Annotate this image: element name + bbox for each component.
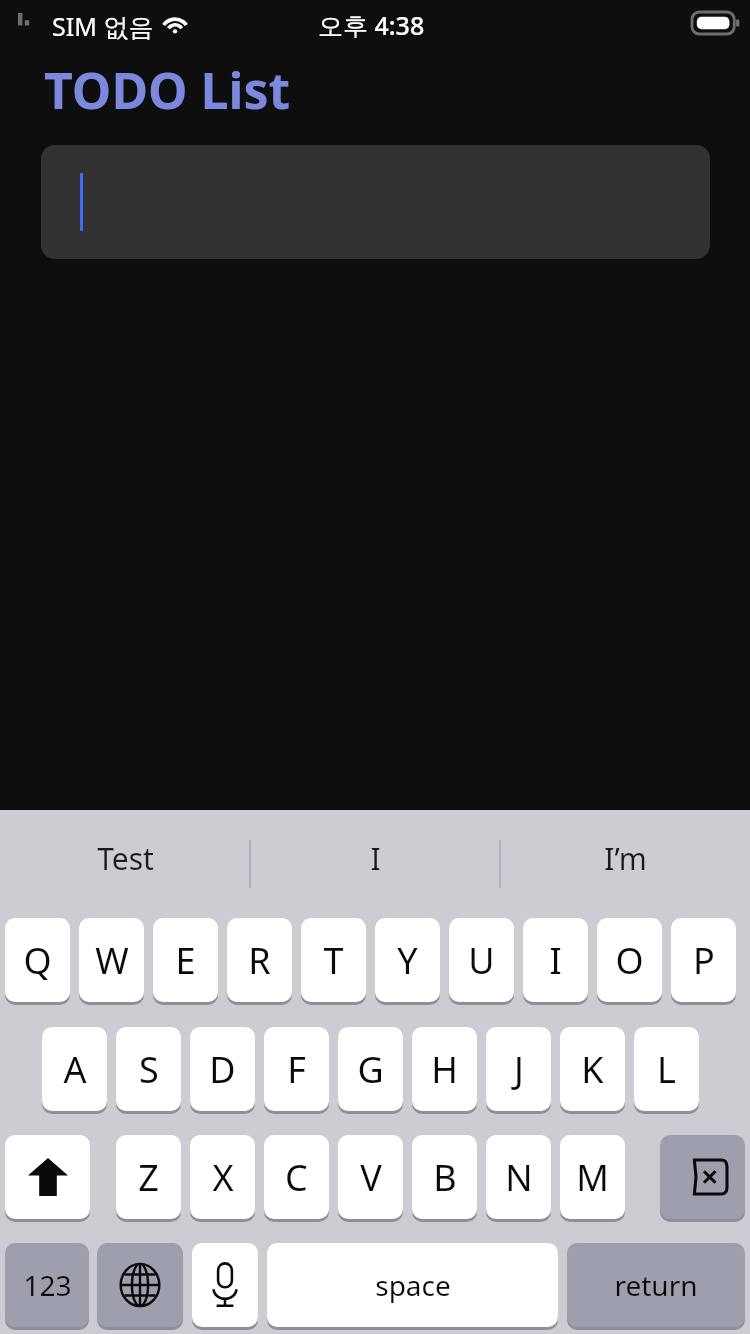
button[interactable]: I [265,810,485,906]
button[interactable]: B [412,1135,477,1219]
staticText: E [175,936,196,985]
button[interactable]: Q [5,918,70,1002]
staticText: U [468,936,495,985]
button[interactable]: D [190,1027,255,1111]
button[interactable]: E [153,918,218,1002]
staticText: 오후 4:38 [318,8,425,42]
button[interactable]: M [560,1135,625,1219]
button[interactable]: space [267,1243,558,1327]
button[interactable]: Y [375,918,440,1002]
staticText: J [514,1045,524,1094]
button[interactable]: W [79,918,144,1002]
staticText: C [285,1153,308,1202]
staticText: I [549,936,562,985]
button[interactable]: Dictation [192,1243,258,1327]
button[interactable]: 123 [5,1243,89,1327]
staticText: Q [23,936,52,985]
staticText: space [375,1266,451,1304]
button[interactable]: Test [15,810,235,906]
button[interactable]: R [227,918,292,1002]
staticText: return [614,1266,698,1304]
staticText: N [505,1153,533,1202]
button[interactable]: O [597,918,662,1002]
button[interactable]: K [560,1027,625,1111]
button[interactable]: G [338,1027,403,1111]
staticText: G [357,1045,384,1094]
button[interactable]: H [412,1027,477,1111]
staticText: T [323,936,344,985]
staticText: X [212,1153,234,1202]
button[interactable] [41,145,710,259]
staticText: K [581,1045,604,1094]
button[interactable]: L [634,1027,699,1111]
staticText: Y [397,936,418,985]
button[interactable]: Shift [5,1135,90,1219]
button[interactable]: Z [116,1135,181,1219]
staticText: B [433,1153,457,1202]
staticText: D [209,1045,236,1094]
staticText: O [615,936,644,985]
staticText: Test [97,838,154,879]
button[interactable]: V [338,1135,403,1219]
staticText: 123 [23,1266,72,1304]
button[interactable]: return [567,1243,745,1327]
staticText: H [431,1045,458,1094]
button[interactable]: P [671,918,736,1002]
button[interactable]: X [190,1135,255,1219]
staticText: A [63,1045,87,1094]
button[interactable]: C [264,1135,329,1219]
staticText: W [95,936,129,985]
button[interactable]: U [449,918,514,1002]
button[interactable]: I’m [515,810,735,906]
staticText: Z [138,1153,159,1202]
staticText: V [360,1153,382,1202]
button[interactable]: S [116,1027,181,1111]
staticText: I [370,838,381,879]
button[interactable]: I [523,918,588,1002]
staticText: L [657,1045,676,1094]
button[interactable]: Backspace [660,1135,745,1219]
staticText: SIM 없음 [52,9,154,43]
staticText: S [139,1045,159,1094]
button[interactable]: Change keyboard language [97,1243,183,1327]
staticText: F [287,1045,306,1094]
staticText: M [576,1153,609,1202]
staticText: TODO List [44,56,291,124]
button[interactable]: T [301,918,366,1002]
staticText: I’m [604,838,647,879]
button[interactable]: N [486,1135,551,1219]
button[interactable]: F [264,1027,329,1111]
staticText: P [693,936,715,985]
staticText: R [248,936,271,985]
button[interactable]: A [42,1027,107,1111]
button[interactable]: J [486,1027,551,1111]
